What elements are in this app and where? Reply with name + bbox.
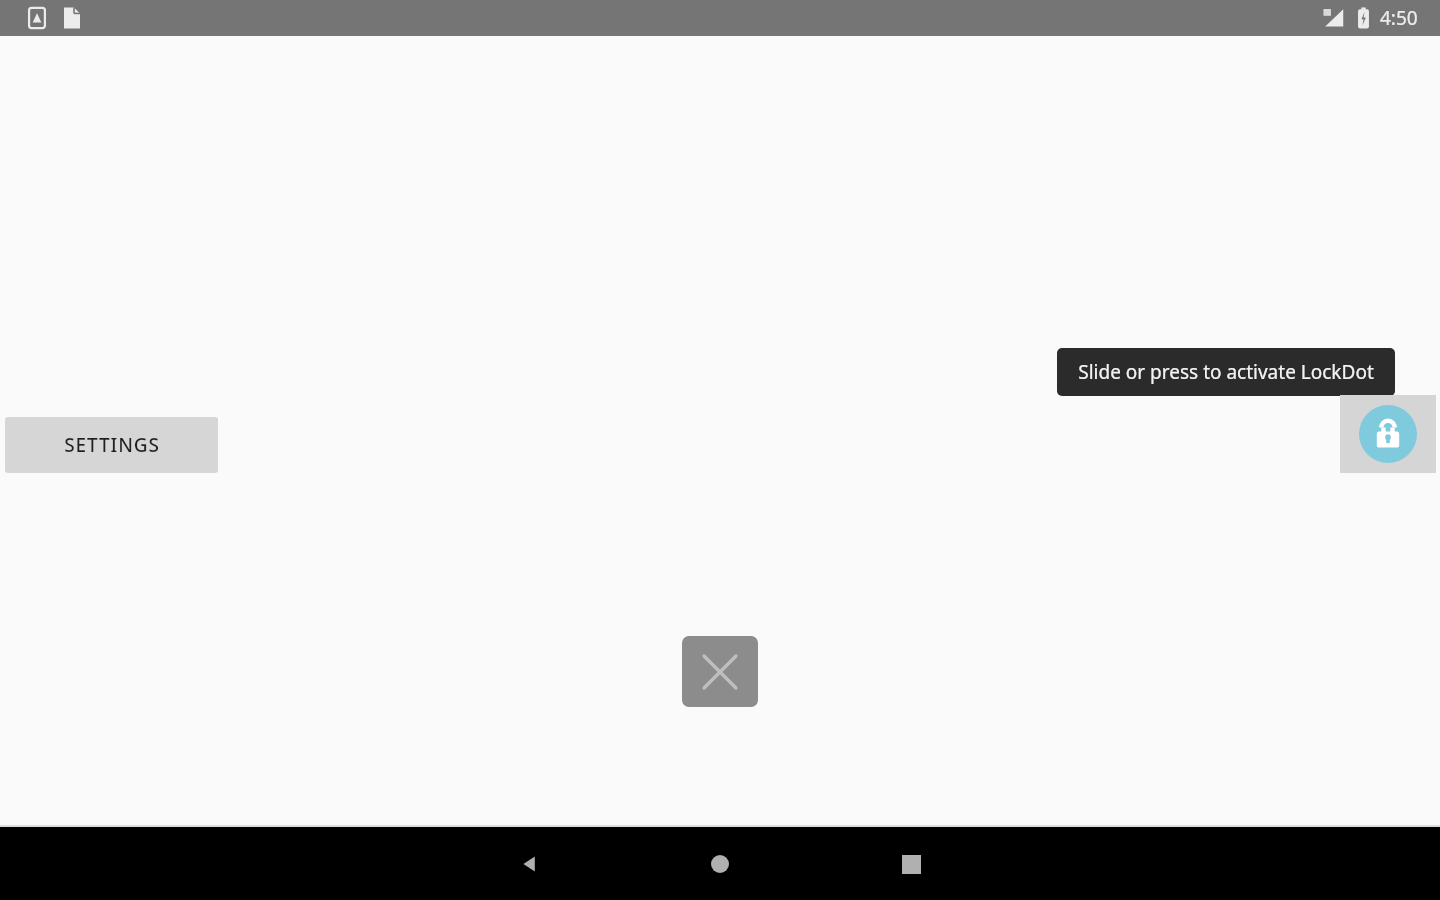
button[interactable]: Close	[682, 636, 758, 707]
button[interactable]: Recent apps	[875, 828, 947, 900]
staticText: 4:50	[1380, 5, 1418, 31]
staticText: SETTINGS	[64, 432, 160, 458]
button[interactable]: Home	[684, 828, 756, 900]
staticText: Slide or press to activate LockDot	[1078, 359, 1374, 385]
button[interactable]: Back	[494, 828, 566, 900]
button[interactable]: Activate LockDot	[1340, 395, 1436, 473]
button[interactable]: SETTINGS	[5, 417, 218, 473]
